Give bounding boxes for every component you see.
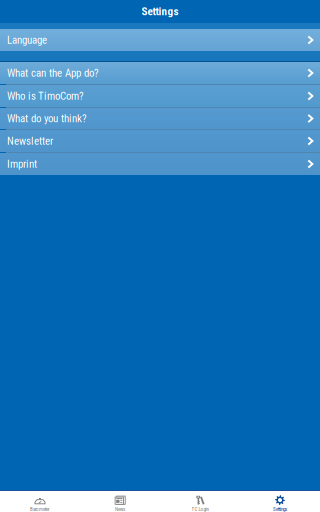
button[interactable]: Imprint: [0, 153, 320, 175]
button[interactable]: Newsletter: [0, 130, 320, 152]
staticText: Language: [7, 34, 47, 46]
staticText: Imprint: [7, 158, 37, 170]
button[interactable]: News: [80, 491, 160, 512]
button[interactable]: What can the App do?: [0, 62, 320, 84]
staticText: What do you think?: [7, 112, 87, 125]
staticText: Settings: [141, 5, 178, 18]
button[interactable]: Settings: [240, 491, 320, 512]
staticText: News: [115, 506, 125, 512]
button[interactable]: Barometer: [0, 491, 80, 512]
button[interactable]: What do you think?: [0, 108, 320, 129]
button[interactable]: Who is TimoCom?: [0, 85, 320, 107]
staticText: TC Login: [191, 506, 208, 512]
staticText: Barometer: [30, 506, 50, 512]
staticText: What can the App do?: [7, 67, 99, 79]
staticText: Newsletter: [7, 135, 53, 147]
button[interactable]: TC Login: [160, 491, 240, 512]
button[interactable]: Language: [0, 29, 320, 51]
staticText: Settings: [273, 506, 287, 512]
staticText: Who is TimoCom?: [7, 90, 84, 102]
